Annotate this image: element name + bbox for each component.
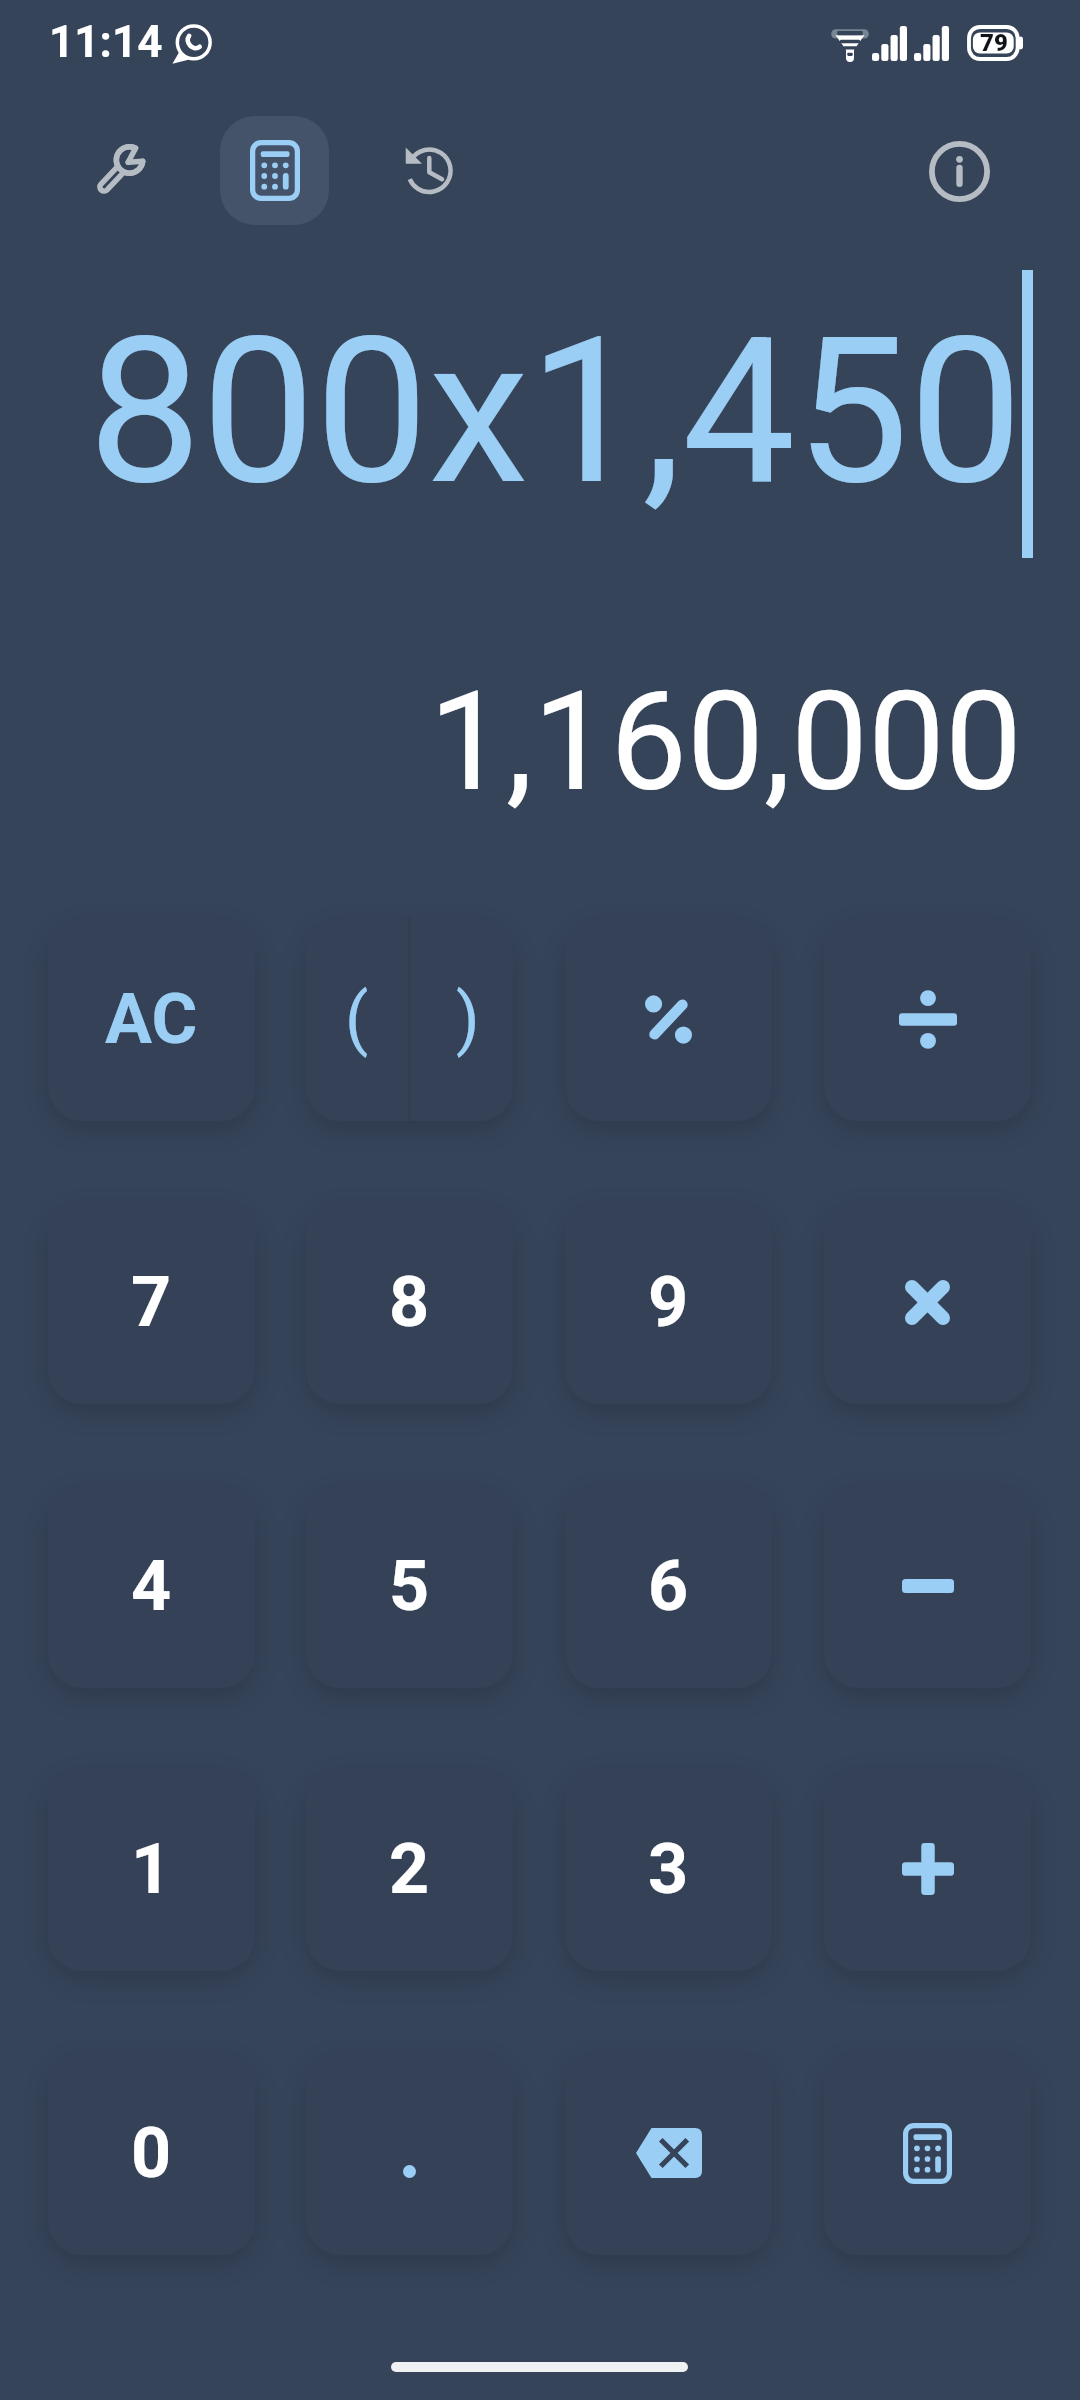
button[interactable]: Plus bbox=[824, 1767, 1031, 1971]
button[interactable]: 0 bbox=[48, 2051, 255, 2255]
button[interactable]: Open parenthesis bbox=[306, 917, 408, 1121]
button[interactable]: Calculator bbox=[220, 116, 329, 225]
button[interactable]: 3 bbox=[565, 1767, 772, 1971]
staticText: ( bbox=[345, 979, 369, 1059]
button[interactable]: Minus bbox=[824, 1484, 1031, 1688]
button[interactable]: Info bbox=[912, 124, 1006, 218]
button[interactable]: Backspace bbox=[565, 2051, 772, 2255]
staticText: 9 bbox=[648, 1261, 689, 1343]
staticText: 4 bbox=[131, 1545, 172, 1627]
staticText: 3 bbox=[648, 1828, 689, 1910]
button[interactable]: Decimal point bbox=[306, 2051, 513, 2255]
staticText: 2 bbox=[389, 1828, 430, 1910]
button[interactable]: Divide bbox=[824, 917, 1031, 1121]
button[interactable]: Multiply bbox=[824, 1200, 1031, 1404]
staticText: 1,160,000 bbox=[429, 662, 1022, 812]
button[interactable]: 5 bbox=[306, 1484, 513, 1688]
button[interactable]: 4 bbox=[48, 1484, 255, 1688]
button[interactable]: Percent bbox=[565, 917, 772, 1121]
button[interactable]: History bbox=[382, 123, 476, 217]
button[interactable]: 8 bbox=[306, 1200, 513, 1404]
staticText: 0 bbox=[131, 2112, 172, 2194]
staticText: AC bbox=[105, 978, 198, 1060]
staticText: 11:14 bbox=[49, 16, 163, 68]
staticText: 1 bbox=[131, 1828, 172, 1910]
button[interactable]: All clear bbox=[48, 917, 255, 1121]
staticText: 800x1,450 bbox=[88, 294, 1023, 531]
button[interactable]: Equals bbox=[824, 2051, 1031, 2255]
button[interactable]: 7 bbox=[48, 1200, 255, 1404]
staticText: 6 bbox=[648, 1545, 689, 1627]
staticText: 8 bbox=[389, 1261, 430, 1343]
staticText: 5 bbox=[389, 1545, 430, 1627]
button[interactable]: Settings bbox=[75, 121, 169, 215]
button[interactable]: 9 bbox=[565, 1200, 772, 1404]
button[interactable]: 2 bbox=[306, 1767, 513, 1971]
staticText: 79 bbox=[980, 29, 1008, 57]
button[interactable]: Close parenthesis bbox=[411, 917, 513, 1121]
button[interactable]: 1 bbox=[48, 1767, 255, 1971]
staticText: 7 bbox=[131, 1261, 172, 1343]
staticText: ) bbox=[456, 979, 480, 1059]
button[interactable]: 6 bbox=[565, 1484, 772, 1688]
